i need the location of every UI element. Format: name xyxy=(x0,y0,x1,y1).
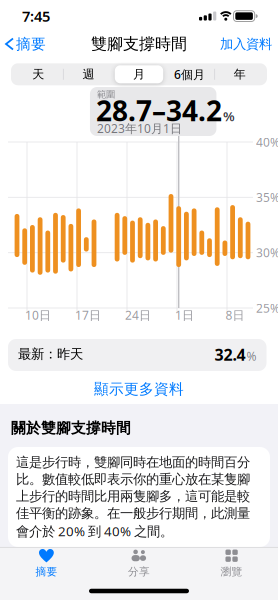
staticText: 2023年10月1日 xyxy=(97,120,182,136)
staticText: 最新：昨天 xyxy=(18,346,83,362)
staticText: 摘要 xyxy=(16,35,46,53)
staticText: 17日 xyxy=(75,307,101,323)
button[interactable]: 加入資料 xyxy=(208,33,272,55)
staticText: 25% xyxy=(256,300,278,316)
button[interactable]: 週 xyxy=(64,64,114,84)
button[interactable]: 摘要 xyxy=(6,33,52,55)
staticText: 這是步行時，雙腳同時在地面的時間百分比。數值較低即表示你的重心放在某隻腳上步行的… xyxy=(16,454,250,540)
staticText: 40% xyxy=(256,134,278,150)
staticText: 瀏覽 xyxy=(221,565,243,578)
staticText: 週 xyxy=(83,67,95,82)
staticText: % xyxy=(246,348,256,364)
button[interactable]: 6個月 xyxy=(164,64,214,84)
staticText: 7:45 xyxy=(22,6,50,26)
staticText: 1日 xyxy=(175,307,194,323)
button[interactable]: 月 xyxy=(114,64,164,84)
staticText: 天 xyxy=(32,67,44,82)
staticText: 30% xyxy=(256,245,278,261)
staticText: 32.4 xyxy=(214,344,245,365)
staticText: 分享 xyxy=(128,565,150,578)
button[interactable]: 分享 xyxy=(93,546,185,580)
staticText: 年 xyxy=(234,67,246,82)
button[interactable]: 天 xyxy=(13,64,63,84)
button[interactable]: 瀏覽 xyxy=(185,546,278,580)
staticText: 顯示更多資料 xyxy=(94,380,184,398)
staticText: 28.7–34.2 xyxy=(96,92,222,129)
button[interactable]: 顯示更多資料 xyxy=(69,378,209,400)
button[interactable]: 摘要 xyxy=(0,546,93,580)
staticText: 雙腳支撐時間 xyxy=(91,34,187,54)
staticText: 35% xyxy=(256,189,278,205)
staticText: 24日 xyxy=(125,307,151,323)
staticText: 摘要 xyxy=(35,565,57,578)
staticText: 關於雙腳支撐時間 xyxy=(11,419,131,437)
staticText: 月 xyxy=(133,67,145,82)
button[interactable]: 年 xyxy=(215,64,265,84)
staticText: 6個月 xyxy=(174,66,205,82)
staticText: 範圍 xyxy=(97,89,115,100)
staticText: 加入資料 xyxy=(220,36,272,52)
staticText: 10日 xyxy=(25,307,51,323)
staticText: % xyxy=(223,107,235,125)
staticText: 8日 xyxy=(225,307,244,323)
